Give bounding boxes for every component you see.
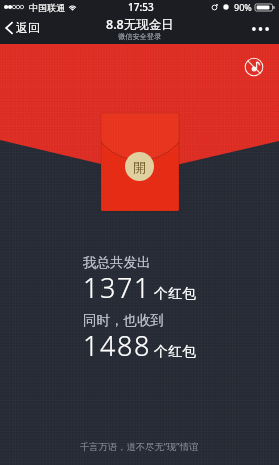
staticText: 開 bbox=[133, 159, 146, 175]
staticText: 8.8无现金日 bbox=[106, 16, 174, 33]
staticText: 90% bbox=[234, 1, 252, 13]
staticText: 返回 bbox=[16, 20, 40, 35]
staticText: 17:53 bbox=[128, 0, 154, 14]
button[interactable]: 更多 bbox=[246, 21, 275, 37]
staticText: 我总共发出 bbox=[83, 254, 151, 271]
staticText: 同时，也收到 bbox=[83, 312, 164, 329]
staticText: 千言万语，道不尽无“现”情谊 bbox=[80, 440, 199, 453]
staticText: 微信安全登录 bbox=[118, 32, 162, 41]
button[interactable]: 关闭音乐 bbox=[244, 57, 264, 77]
button[interactable]: 返回 bbox=[2, 15, 43, 40]
staticText: 个红包 bbox=[154, 343, 196, 361]
staticText: 1488 bbox=[83, 327, 152, 364]
staticText: 1371 bbox=[83, 269, 152, 306]
staticText: 中国联通 bbox=[29, 2, 65, 13]
staticText: 个红包 bbox=[154, 285, 196, 303]
button[interactable]: 開 bbox=[125, 152, 154, 181]
